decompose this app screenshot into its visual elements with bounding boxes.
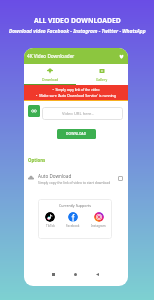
staticText: Currently Supports (59, 203, 91, 208)
staticText: • Make sure 'Auto Download Service' is r… (24, 93, 128, 98)
button[interactable]: TikTok (45, 212, 55, 228)
button[interactable]: Back (92, 269, 102, 279)
button[interactable]: 4K Video Downloader (24, 48, 128, 64)
staticText: Video URL here.. (62, 111, 94, 117)
staticText: • Simply copy link of the video (24, 87, 128, 91)
staticText: DOWNLOAD (66, 132, 87, 136)
button[interactable]: Auto Download (24, 171, 128, 185)
staticText: Instagram (91, 224, 106, 228)
staticText: Simply copy the link of video to start d… (38, 180, 111, 184)
button[interactable]: Recents (48, 269, 58, 279)
staticText: 4K Video Downloader (27, 53, 75, 59)
staticText: ALL VIDEO DOWNLOADED (34, 16, 121, 25)
button[interactable]: Paste link (28, 105, 40, 117)
staticText: Download (42, 77, 59, 82)
staticText: Facebook (66, 224, 80, 228)
button[interactable]: DOWNLOAD (57, 129, 96, 139)
staticText: TikTok (46, 224, 55, 228)
button[interactable]: Download (24, 64, 76, 85)
staticText: Download video Facebook - Instagram - Tw… (9, 28, 146, 35)
button[interactable]: Video URL here.. (42, 107, 123, 120)
button[interactable]: Instagram (91, 212, 106, 228)
staticText: Options (28, 157, 46, 163)
button[interactable]: Facebook (66, 212, 80, 228)
button[interactable]: Toggle auto download (118, 176, 123, 181)
staticText: Gallery (96, 77, 108, 82)
button[interactable]: Gallery (76, 64, 128, 85)
button[interactable]: Home (70, 269, 80, 279)
staticText: Auto Download (38, 173, 72, 179)
